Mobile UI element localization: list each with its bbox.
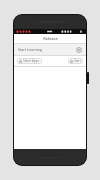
staticText: Release xyxy=(43,36,58,41)
staticText: Select Apps xyxy=(23,59,40,63)
staticText: Start xyxy=(74,59,81,63)
button[interactable]: Start xyxy=(68,58,83,64)
staticText: Start Learning xyxy=(18,47,42,52)
button[interactable]: Settings xyxy=(76,47,82,53)
button[interactable]: Select Apps xyxy=(17,58,42,64)
button[interactable]: Start Learning xyxy=(14,44,86,55)
